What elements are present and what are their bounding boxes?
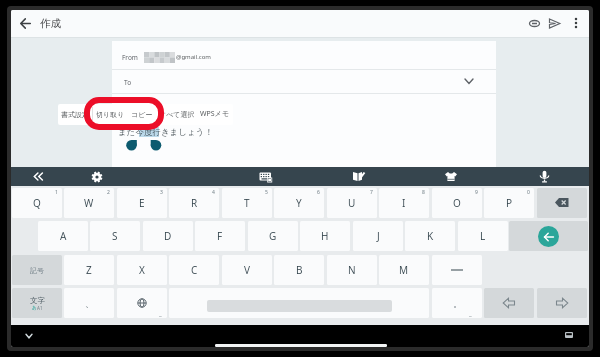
staticText: 1 [55,189,58,196]
staticText: _ [469,310,472,318]
staticText: Z [86,263,92,277]
staticText: P [506,196,513,210]
button[interactable]: H [300,221,350,251]
staticText: Q [33,196,41,210]
staticText: M [399,263,409,277]
button[interactable] [567,12,584,34]
staticText: 書式設定 [61,110,89,119]
button[interactable]: V [222,255,272,285]
staticText: A1 [37,305,43,311]
button[interactable] [432,255,482,285]
button[interactable]: O [432,188,482,218]
button[interactable]: M [379,255,429,285]
button[interactable] [87,167,106,186]
button[interactable] [169,288,429,318]
button[interactable] [441,167,460,186]
staticText: I [402,196,406,210]
staticText: 記号 [30,266,44,275]
staticText: 9 [475,189,478,196]
button[interactable] [29,167,48,186]
button[interactable]: 文字 [12,288,62,318]
button[interactable]: X [117,255,167,285]
button[interactable]: Y [274,188,324,218]
button[interactable] [349,167,368,186]
button[interactable]: E [117,188,167,218]
staticText: 0 [527,189,530,196]
staticText: To [124,78,132,87]
button[interactable]: D [143,221,193,251]
staticText: D [164,229,172,243]
staticText: _ [159,310,162,318]
button[interactable] [537,288,587,318]
button[interactable]: U [327,188,377,218]
staticText: B [296,263,303,277]
button[interactable]: 。 [432,288,482,318]
button[interactable] [509,221,588,251]
button[interactable]: L [458,221,508,251]
staticText: 4 [212,189,215,196]
staticText: あ [32,305,37,311]
staticText: K [427,229,434,243]
staticText: すべて選択 [159,110,195,119]
button[interactable]: A [38,221,88,251]
button[interactable]: _ [117,288,167,318]
staticText: F [217,229,223,243]
staticText: Y [296,196,302,210]
button[interactable]: N [327,255,377,285]
staticText: N [348,263,356,277]
staticText: J [377,229,380,243]
button[interactable]: J [353,221,403,251]
staticText: S [112,229,118,243]
staticText: コピー [131,110,153,119]
staticText: X [139,263,145,277]
staticText: T [244,196,250,210]
staticText: H [321,229,329,243]
staticText: 作成 [40,17,61,30]
button[interactable] [535,167,554,186]
button[interactable]: S [90,221,140,251]
staticText: 2 [107,189,110,196]
button[interactable]: Q [12,188,62,218]
staticText: WPSメモ [200,109,229,119]
button[interactable] [15,12,36,34]
staticText: U [348,196,356,210]
staticText: 7 [370,189,373,196]
button[interactable]: G [248,221,298,251]
staticText: W [84,196,94,210]
button[interactable]: P [484,188,534,218]
staticText: 。 [453,298,462,309]
button[interactable] [256,167,275,186]
button[interactable]: F [195,221,245,251]
staticText: A [60,229,67,243]
staticText: From [122,53,138,62]
staticText: R [191,196,198,210]
staticText: E [139,196,145,210]
staticText: 3 [160,189,163,196]
staticText: C [191,263,198,277]
staticText: また今度行きましょう！ [118,127,213,138]
button[interactable] [484,288,534,318]
staticText: V [244,263,250,277]
staticText: 、 [85,298,94,309]
button[interactable] [537,188,587,218]
button[interactable]: W [64,188,114,218]
button[interactable]: Z [64,255,114,285]
button[interactable]: C [169,255,219,285]
button[interactable] [21,328,37,344]
button[interactable] [525,12,544,34]
button[interactable] [112,69,496,92]
staticText: 切り取り [96,110,125,119]
button[interactable]: 記号 [12,255,62,285]
staticText: @gmail.com [176,53,211,61]
button[interactable]: I [379,188,429,218]
button[interactable]: K [405,221,455,251]
button[interactable]: R [169,188,219,218]
staticText: 5 [265,189,268,196]
button[interactable] [545,12,564,34]
button[interactable]: B [274,255,324,285]
staticText: 文字 [30,296,45,305]
staticText: G [269,229,277,243]
staticText: 8 [422,189,425,196]
button[interactable]: T [222,188,272,218]
